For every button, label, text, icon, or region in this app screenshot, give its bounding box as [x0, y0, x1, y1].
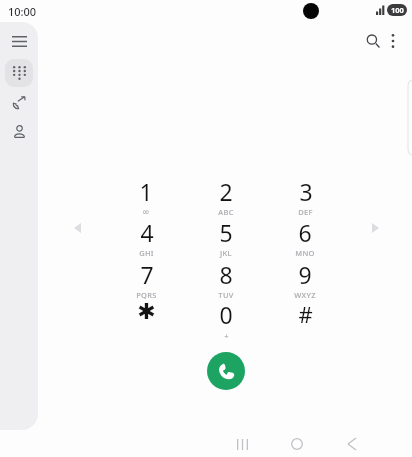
staticText: 100: [391, 5, 404, 15]
staticText: MNO: [295, 248, 315, 258]
staticText: 6: [298, 217, 312, 248]
button[interactable]: Recent apps: [226, 431, 258, 457]
button[interactable]: 8: [195, 259, 257, 301]
button[interactable]: Home: [281, 431, 313, 457]
button[interactable]: 4: [115, 217, 177, 259]
button[interactable]: 1: [115, 176, 177, 218]
staticText: 4: [140, 217, 154, 248]
staticText: DEF: [298, 207, 313, 217]
staticText: 7: [140, 259, 154, 290]
button[interactable]: Next page: [366, 218, 385, 237]
button[interactable]: 2: [195, 176, 257, 218]
button[interactable]: ✱: [115, 299, 177, 341]
button[interactable]: Back: [336, 431, 368, 457]
button[interactable]: Recent calls: [6, 90, 32, 116]
staticText: PQRS: [136, 290, 157, 300]
staticText: 8: [219, 259, 233, 290]
button[interactable]: Keypad: [5, 59, 33, 87]
button[interactable]: 3: [274, 176, 336, 218]
staticText: 2: [219, 176, 233, 207]
staticText: ∞: [142, 207, 150, 217]
staticText: #: [298, 299, 313, 329]
staticText: TUV: [218, 290, 234, 300]
staticText: GHI: [139, 248, 154, 258]
staticText: ABC: [218, 207, 234, 217]
button[interactable]: 0: [195, 299, 257, 341]
staticText: ✱: [137, 299, 156, 325]
staticText: 5: [219, 217, 233, 248]
staticText: 0: [219, 299, 233, 330]
staticText: 1: [139, 176, 153, 207]
button[interactable]: Call: [207, 352, 245, 390]
button[interactable]: Open navigation menu: [6, 28, 32, 54]
button[interactable]: Search: [361, 29, 385, 53]
button[interactable]: Previous page: [68, 218, 87, 237]
button[interactable]: 6: [274, 217, 336, 259]
staticText: 10:00: [8, 4, 37, 19]
staticText: WXYZ: [294, 290, 316, 300]
staticText: +: [224, 331, 229, 341]
button[interactable]: #: [274, 299, 336, 341]
button[interactable]: 5: [195, 217, 257, 259]
staticText: 3: [299, 176, 313, 207]
button[interactable]: 9: [274, 259, 336, 301]
button[interactable]: 7: [115, 259, 177, 301]
staticText: 9: [298, 259, 312, 290]
staticText: JKL: [220, 248, 232, 258]
button[interactable]: Contacts: [6, 118, 32, 144]
button[interactable]: More options: [381, 29, 405, 53]
